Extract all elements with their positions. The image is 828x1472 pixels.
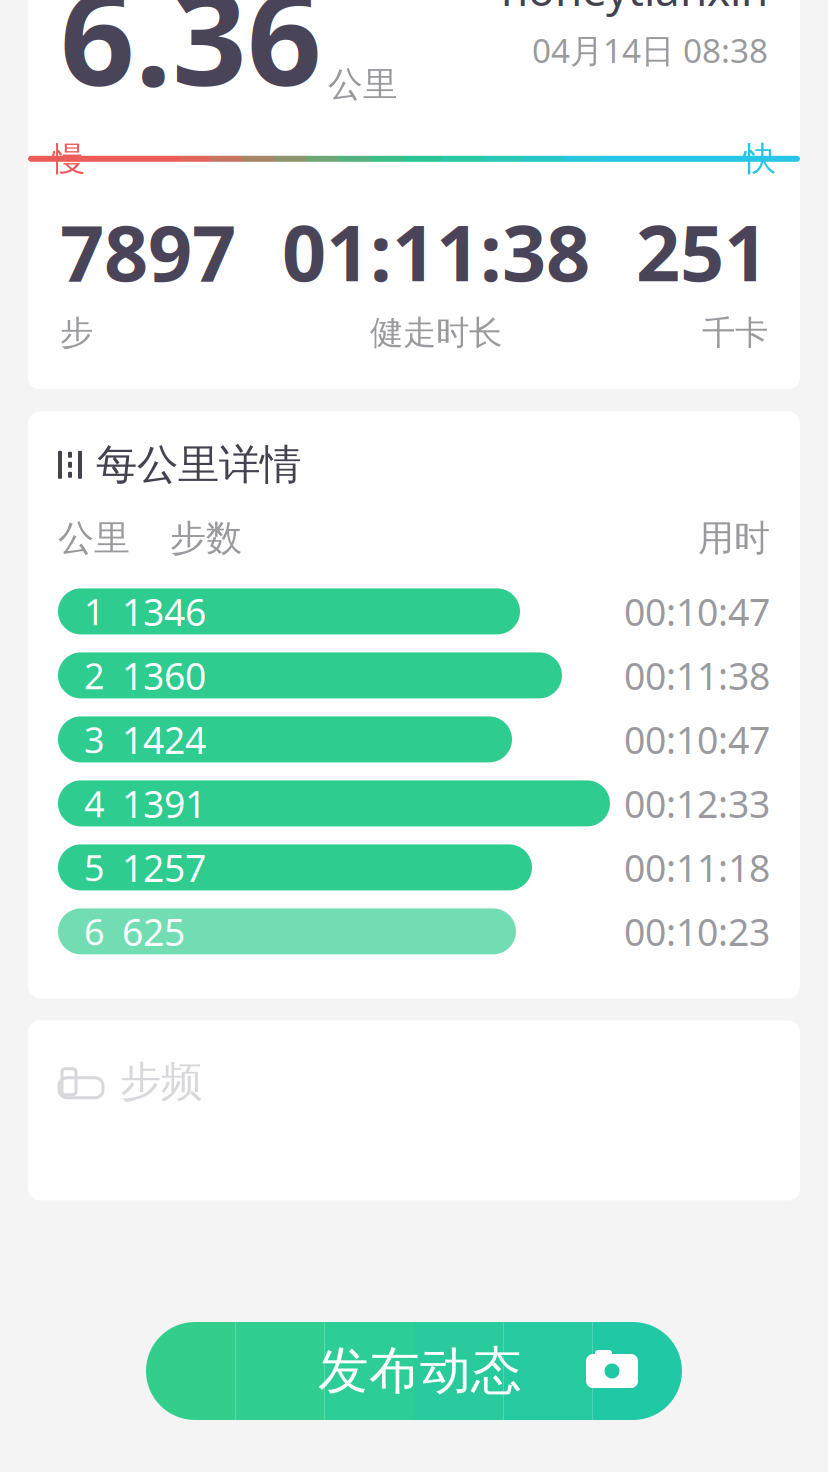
staticText: 7897: [60, 200, 236, 302]
staticText: 01:11:38: [282, 200, 590, 302]
staticText: 251: [636, 200, 768, 302]
staticText: 步频: [120, 1056, 202, 1107]
staticText: 625: [122, 907, 185, 956]
staticText: 1257: [122, 843, 206, 892]
staticText: 00:10:47: [624, 587, 770, 636]
staticText: 步数: [170, 516, 242, 560]
staticText: 1424: [122, 715, 206, 764]
staticText: 00:10:23: [624, 907, 770, 956]
staticText: 2: [84, 651, 105, 699]
staticText: 1391: [122, 779, 206, 828]
staticText: 00:11:38: [624, 651, 770, 700]
staticText: 00:10:47: [624, 715, 770, 764]
staticText: 00:12:33: [624, 779, 770, 828]
staticText: 用时: [698, 516, 770, 560]
staticText: 6.36: [60, 0, 322, 122]
staticText: 1: [84, 587, 105, 635]
staticText: 1346: [122, 587, 206, 636]
staticText: 千卡: [702, 312, 768, 353]
staticText: 公里: [58, 516, 130, 560]
staticText: 快: [743, 138, 776, 179]
staticText: 3: [84, 715, 105, 763]
staticText: 慢: [52, 138, 85, 179]
staticText: 每公里详情: [96, 439, 301, 490]
staticText: honeytianxin: [501, 0, 768, 18]
staticText: 公里: [328, 63, 398, 106]
staticText: 04月14日 08:38: [532, 28, 768, 72]
staticText: 6: [84, 907, 105, 955]
staticText: 发布动态: [318, 1340, 522, 1402]
staticText: 1360: [122, 651, 206, 700]
staticText: 4: [84, 779, 105, 827]
staticText: 5: [84, 843, 105, 891]
staticText: 健走时长: [370, 312, 502, 353]
staticText: 步: [60, 312, 93, 353]
button[interactable]: 发布动态: [146, 1322, 682, 1420]
staticText: 00:11:18: [624, 843, 770, 892]
